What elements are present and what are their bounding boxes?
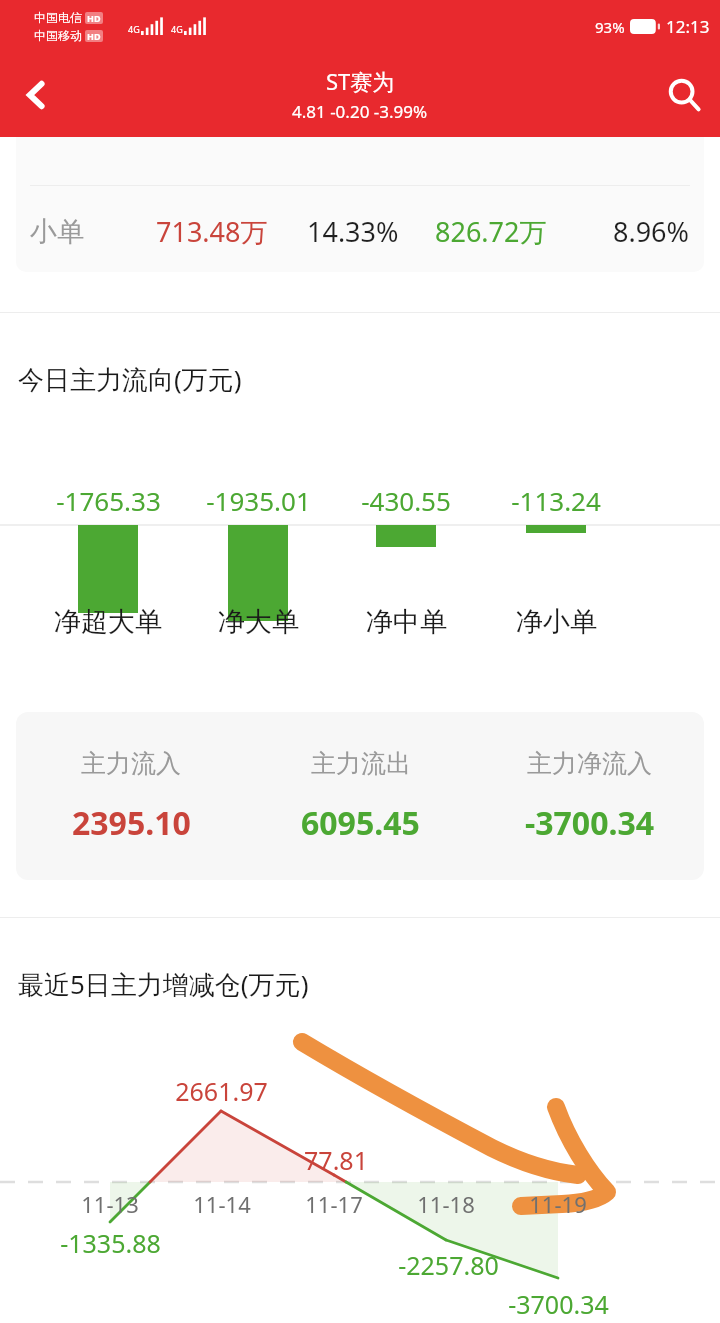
staticText: -1765.33 xyxy=(56,483,161,518)
staticText: 最近5日主力增减仓(万元) xyxy=(18,966,309,1002)
staticText: -113.24 xyxy=(511,483,601,518)
staticText: 11-18 xyxy=(417,1189,475,1219)
staticText: 净超大单 xyxy=(54,605,162,639)
staticText: 2661.97 xyxy=(175,1074,268,1108)
staticText: -3700.34 xyxy=(525,801,655,845)
staticText: -1335.88 xyxy=(60,1226,161,1260)
staticText: ST赛为 xyxy=(326,66,395,96)
staticText: 4.81 -0.20 -3.99% xyxy=(292,100,428,123)
staticText: 中国电信 xyxy=(34,10,82,25)
staticText: 11-17 xyxy=(305,1189,363,1219)
staticText: 今日主力流向(万元) xyxy=(18,361,242,397)
button[interactable]: Search xyxy=(648,59,720,131)
staticText: -3700.34 xyxy=(508,1287,609,1321)
staticText: HD xyxy=(87,30,101,42)
staticText: 11-13 xyxy=(81,1189,139,1219)
staticText: 净大单 xyxy=(218,605,299,639)
staticText: 净小单 xyxy=(516,605,597,639)
staticText: -1935.01 xyxy=(206,483,311,518)
staticText: 11-14 xyxy=(193,1189,251,1219)
staticText: 主力流入 xyxy=(81,748,181,779)
staticText: 主力净流入 xyxy=(527,748,652,779)
staticText: 净中单 xyxy=(366,605,447,639)
staticText: 2395.10 xyxy=(72,801,191,845)
staticText: 713.48万 xyxy=(156,213,268,250)
button[interactable]: Back xyxy=(0,59,72,131)
staticText: 4G xyxy=(171,23,183,35)
staticText: 8.96% xyxy=(613,213,690,250)
staticText: -430.55 xyxy=(361,483,451,518)
staticText: 14.33% xyxy=(307,213,399,250)
staticText: 小单 xyxy=(30,215,84,249)
button[interactable]: 主力流入 xyxy=(16,712,704,880)
staticText: 12:13 xyxy=(666,15,710,38)
staticText: HD xyxy=(87,12,101,24)
staticText: 826.72万 xyxy=(435,213,547,250)
staticText: 中国移动 xyxy=(34,28,82,43)
staticText: 6095.45 xyxy=(301,801,420,845)
staticText: 11-19 xyxy=(529,1189,587,1219)
staticText: 93% xyxy=(595,17,625,37)
staticText: 主力流出 xyxy=(311,748,411,779)
staticText: 77.81 xyxy=(304,1143,368,1177)
staticText: -2257.80 xyxy=(398,1248,499,1282)
staticText: 4G xyxy=(128,23,140,35)
